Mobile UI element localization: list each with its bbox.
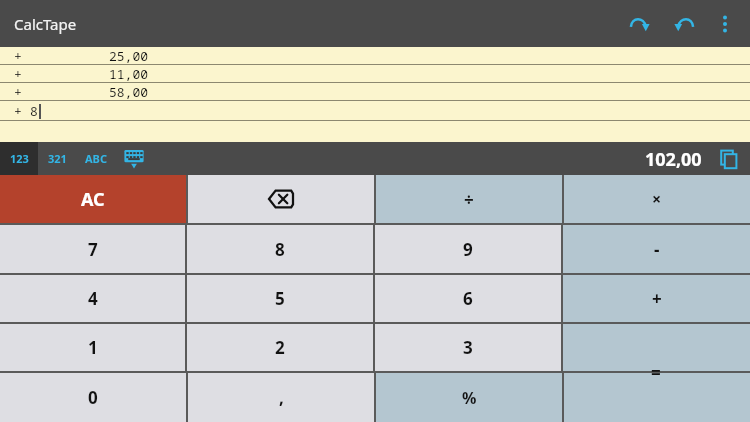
staticText: 5	[275, 287, 285, 310]
button[interactable]: ÷	[376, 175, 562, 223]
staticText: +	[14, 65, 22, 83]
staticText: AC	[81, 187, 105, 212]
button[interactable]: 3	[375, 324, 561, 371]
button[interactable]: 1	[0, 324, 185, 371]
button[interactable]: 123	[0, 142, 38, 175]
staticText: 1	[88, 336, 98, 359]
button[interactable]: -	[563, 225, 750, 273]
button[interactable]: +	[0, 47, 750, 65]
button[interactable]: ABC	[76, 142, 116, 175]
button[interactable]: 0	[0, 373, 186, 422]
staticText: 58,00	[38, 83, 148, 101]
button[interactable]: Copy result	[714, 145, 742, 173]
staticText: 9	[463, 238, 473, 261]
staticText: 8	[275, 238, 285, 261]
staticText: +	[14, 47, 22, 65]
staticText: 3	[463, 336, 473, 359]
staticText: 4	[88, 287, 98, 310]
staticText: =	[651, 361, 661, 384]
staticText: 102,00	[645, 147, 702, 172]
staticText: ×	[652, 188, 662, 210]
staticText: 8	[30, 102, 38, 120]
staticText: CalcTape	[14, 14, 77, 34]
button[interactable]: 6	[375, 275, 561, 322]
staticText: +	[14, 83, 22, 101]
staticText: 2	[275, 336, 285, 359]
button[interactable]: Undo	[662, 2, 706, 46]
staticText: 123	[10, 151, 29, 166]
staticText: ABC	[85, 151, 107, 166]
staticText: 7	[88, 238, 98, 261]
staticText: %	[462, 387, 477, 409]
button[interactable]: 2	[187, 324, 373, 371]
button[interactable]: More options	[706, 5, 744, 43]
button[interactable]: ×	[564, 175, 750, 223]
button[interactable]: AC	[0, 175, 186, 223]
staticText: ,	[279, 386, 284, 409]
button[interactable]: 321	[38, 142, 76, 175]
button[interactable]: 4	[0, 275, 185, 322]
staticText: -	[654, 238, 660, 261]
staticText: ÷	[464, 188, 474, 211]
staticText: 321	[48, 151, 67, 166]
button[interactable]: ,	[188, 373, 374, 422]
button[interactable]: 9	[375, 225, 561, 273]
button[interactable]: Keyboard	[116, 142, 152, 175]
button[interactable]: 7	[0, 225, 185, 273]
button[interactable]: +	[0, 83, 750, 101]
button[interactable]: 8	[187, 225, 373, 273]
staticText: +	[14, 102, 22, 120]
staticText: 11,00	[38, 65, 148, 83]
button[interactable]: Redo	[618, 2, 662, 46]
button[interactable]: +	[563, 275, 750, 322]
button[interactable]: Equals	[562, 323, 750, 422]
button[interactable]: Backspace	[188, 175, 374, 223]
button[interactable]: +	[0, 65, 750, 83]
staticText: 0	[88, 386, 98, 409]
staticText: 6	[463, 287, 473, 310]
button[interactable]: +	[0, 101, 750, 121]
button[interactable]: 5	[187, 275, 373, 322]
staticText: 25,00	[38, 47, 148, 65]
staticText: +	[652, 287, 662, 310]
button[interactable]: %	[376, 373, 562, 422]
